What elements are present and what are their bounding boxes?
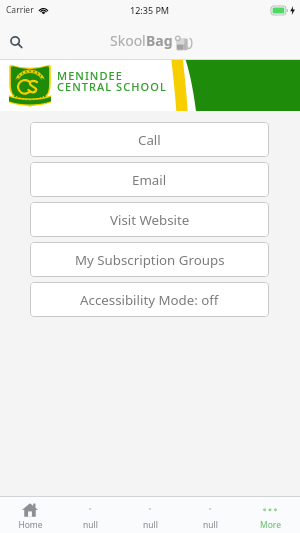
button[interactable]: Accessibility Mode: off — [30, 282, 269, 317]
button[interactable]: My Subscription Groups — [30, 242, 269, 277]
staticText: null — [83, 519, 98, 531]
staticText: MENINDEE — [57, 68, 123, 83]
button[interactable]: Email — [30, 162, 269, 197]
staticText: Call — [138, 131, 161, 149]
button[interactable]: More — [240, 497, 300, 533]
staticText: Bag — [146, 31, 173, 50]
staticText: Skool — [110, 31, 146, 50]
staticText: More — [260, 519, 281, 531]
staticText: Visit Website — [110, 211, 190, 229]
staticText: Accessibility Mode: off — [80, 291, 219, 309]
button[interactable]: Visit Website — [30, 202, 269, 237]
staticText: Carrier — [6, 4, 34, 16]
staticText: null — [143, 519, 158, 531]
staticText: CENTRAL SCHOOL — [57, 79, 167, 94]
staticText: Home — [18, 519, 43, 531]
button[interactable]: Search — [0, 20, 34, 60]
staticText: My Subscription Groups — [75, 251, 225, 269]
staticText: null — [203, 519, 218, 531]
button[interactable]: Call — [30, 122, 269, 157]
button[interactable]: null — [180, 497, 240, 533]
button[interactable]: null — [120, 497, 180, 533]
button[interactable]: Home — [0, 497, 60, 533]
button[interactable]: null — [60, 497, 120, 533]
staticText: Email — [132, 171, 167, 189]
staticText: 12:35 PM — [130, 4, 170, 16]
